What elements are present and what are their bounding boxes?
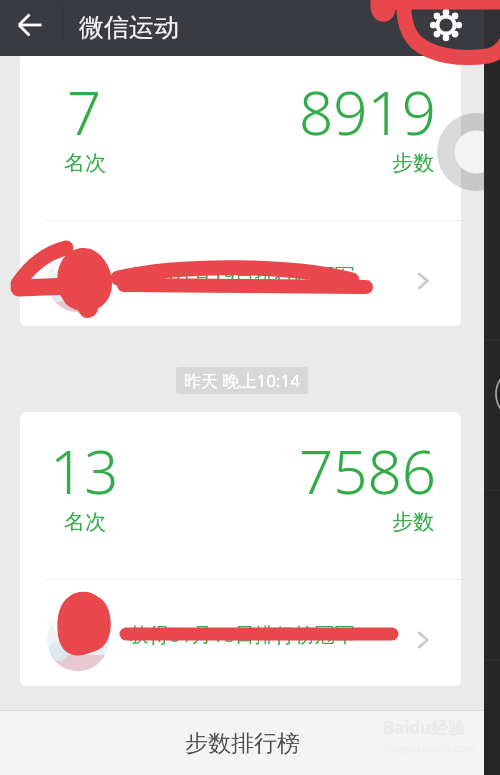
staticText: 7586 bbox=[299, 430, 437, 512]
button[interactable]: Back bbox=[0, 0, 62, 56]
staticText: 昨天 晚上10:14 bbox=[184, 369, 300, 392]
staticText: 获得01月18日排行榜冠军 bbox=[129, 621, 355, 648]
staticText: 8919 bbox=[299, 71, 437, 153]
staticText: 步数 bbox=[392, 150, 434, 176]
staticText: 名次 bbox=[64, 509, 106, 535]
staticText: 步数排行榜 bbox=[185, 729, 300, 758]
staticText: Baidu经验 bbox=[383, 716, 466, 739]
staticText: 步数 bbox=[392, 509, 434, 535]
button[interactable]: 获得01月19日排行榜冠军 bbox=[20, 230, 461, 326]
staticText: 微信运动 bbox=[79, 12, 179, 43]
button[interactable]: Settings bbox=[414, 0, 484, 56]
button[interactable]: 获得01月18日排行榜冠军 bbox=[20, 589, 461, 686]
staticText: 获得01月19日排行榜冠军 bbox=[129, 262, 355, 289]
staticText: 名次 bbox=[64, 150, 106, 176]
button[interactable]: 步数排行榜 bbox=[0, 711, 484, 775]
staticText: 13 bbox=[50, 430, 119, 512]
staticText: 7 bbox=[67, 71, 102, 153]
